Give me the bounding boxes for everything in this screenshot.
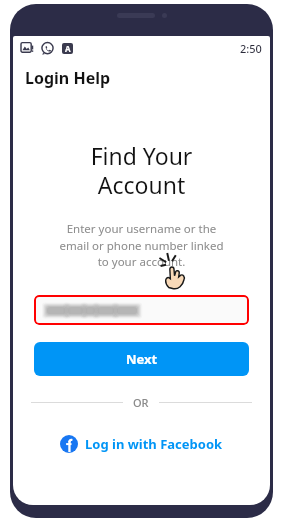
staticText: Log in with Facebook bbox=[85, 435, 223, 453]
staticText: A bbox=[65, 43, 71, 54]
staticText: Find Your Account bbox=[13, 140, 270, 201]
button[interactable] bbox=[34, 295, 249, 325]
staticText: OR bbox=[133, 395, 149, 410]
staticText: 2:50 bbox=[240, 41, 262, 56]
staticText: Enter your username or the email or phon… bbox=[31, 221, 252, 269]
staticText: Next bbox=[126, 350, 158, 368]
button[interactable]: Next bbox=[34, 342, 249, 376]
staticText: Login Help bbox=[25, 67, 111, 89]
button[interactable]: Facebook bbox=[13, 430, 270, 458]
other: Facebook bbox=[60, 435, 78, 453]
